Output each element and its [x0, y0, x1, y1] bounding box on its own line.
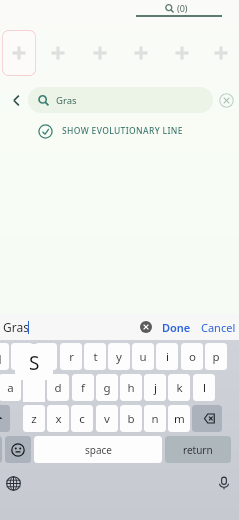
button[interactable]: h [120, 374, 142, 401]
button[interactable]: space [34, 436, 162, 463]
button[interactable]: Add team member slot 4 [124, 30, 158, 76]
button[interactable]: f [72, 374, 94, 401]
button[interactable]: Add team member slot 5 [165, 30, 199, 76]
button[interactable]: o [181, 343, 203, 370]
button[interactable]: Change keyboard language [2, 472, 24, 494]
staticText: o [189, 349, 196, 365]
button[interactable]: 123 [0, 436, 2, 463]
button[interactable]: (0) [163, 2, 190, 14]
staticText: m [174, 411, 185, 427]
button[interactable]: Backspace [192, 405, 222, 432]
button[interactable]: c [71, 405, 93, 432]
button[interactable]: q [0, 343, 9, 370]
staticText: return [183, 443, 213, 457]
staticText: y [116, 349, 122, 365]
button[interactable]: Done [160, 320, 193, 335]
button[interactable]: p [205, 343, 227, 370]
button[interactable]: Add team member slot 1 [2, 30, 36, 76]
button[interactable]: g [96, 374, 118, 401]
staticText: Gras [3, 319, 29, 335]
button[interactable]: b [120, 405, 142, 432]
staticText: h [127, 380, 135, 396]
button[interactable]: k [168, 374, 190, 401]
staticText: space [85, 443, 112, 457]
button[interactable]: e [35, 343, 57, 370]
staticText: SHOW EVOLUTIONARY LINE [62, 125, 183, 137]
staticText: q [0, 349, 2, 365]
staticText: c [79, 411, 85, 427]
button[interactable]: Clear search [213, 87, 239, 113]
staticText: j [154, 380, 157, 396]
button[interactable]: v [96, 405, 118, 432]
button[interactable]: Back [4, 88, 28, 112]
staticText: n [151, 411, 159, 427]
button[interactable]: w [11, 343, 33, 370]
button[interactable]: m [168, 405, 190, 432]
staticText: u [139, 349, 147, 365]
button[interactable]: i [156, 343, 178, 370]
button[interactable]: Voice input [213, 472, 235, 494]
button[interactable]: Shift [0, 405, 10, 432]
staticText: (0) [177, 2, 188, 14]
staticText: k [176, 380, 183, 396]
staticText: r [69, 349, 74, 365]
button[interactable]: n [144, 405, 166, 432]
button[interactable]: z [23, 405, 45, 432]
button[interactable]: Add team member slot 2 [41, 30, 75, 76]
staticText: g [103, 380, 111, 396]
button[interactable]: Add team member slot 3 [83, 30, 117, 76]
button[interactable]: Gras [28, 87, 213, 113]
button[interactable]: d [47, 374, 69, 401]
staticText: x [55, 411, 62, 427]
staticText: b [127, 411, 135, 427]
button[interactable]: t [84, 343, 106, 370]
button[interactable]: u [132, 343, 154, 370]
staticText: i [166, 349, 169, 365]
staticText: Gras [56, 94, 77, 107]
button[interactable]: a [0, 374, 21, 401]
button[interactable]: Cancel [199, 320, 238, 335]
button[interactable]: return [165, 436, 231, 463]
button[interactable]: y [108, 343, 130, 370]
button[interactable]: SHOW EVOLUTIONARY LINE [38, 116, 239, 146]
button[interactable]: l [193, 374, 215, 401]
button[interactable]: Emoji [5, 436, 31, 463]
button[interactable]: j [144, 374, 166, 401]
staticText: a [7, 380, 14, 396]
staticText: v [104, 411, 110, 427]
staticText: f [81, 380, 85, 396]
button[interactable]: r [60, 343, 82, 370]
staticText: p [212, 349, 220, 365]
staticText: z [31, 411, 37, 427]
staticText: l [203, 380, 206, 396]
staticText: Cancel [201, 320, 236, 335]
staticText: t [93, 349, 98, 365]
staticText: S [29, 350, 40, 376]
button[interactable]: x [47, 405, 69, 432]
button[interactable]: Clear text [137, 318, 155, 336]
button[interactable]: Add team member slot 6 [204, 30, 238, 76]
staticText: d [54, 380, 62, 396]
staticText: Done [162, 320, 191, 335]
